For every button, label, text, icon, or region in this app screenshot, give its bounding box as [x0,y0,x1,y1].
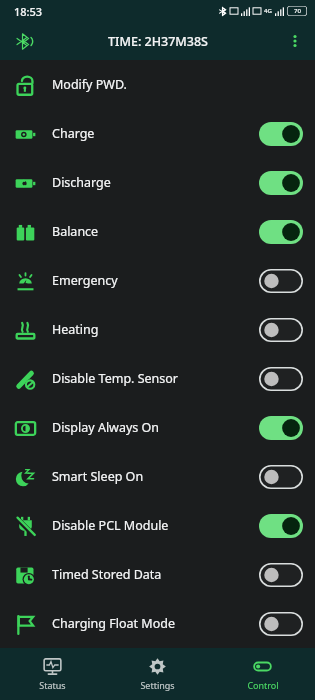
button[interactable]: On [259,171,303,195]
staticText: Emergency [52,272,259,289]
button[interactable]: Display Always On [0,403,315,452]
button[interactable]: On [259,122,303,146]
button[interactable]: Settings [105,648,210,700]
staticText: Control [247,679,279,691]
staticText: Charge [52,125,259,142]
staticText: Disable PCL Module [52,517,259,534]
button[interactable]: Status [0,648,105,700]
button[interactable]: More options [279,25,311,57]
button[interactable]: Charging Float Mode [0,599,315,648]
button[interactable]: Disable Temp. Sensor [0,354,315,403]
button[interactable]: Extra [0,648,315,697]
button[interactable]: Discharge [0,158,315,207]
staticText: Settings [140,679,175,691]
staticText: Balance [52,223,259,240]
staticText: TIME: 2H37M38S [108,33,208,50]
staticText: Display Always On [52,419,259,436]
button[interactable]: Modify PWD. [0,60,315,109]
staticText: 70 [294,7,301,15]
button[interactable]: On [259,514,303,538]
button[interactable]: Timed Stored Data [0,550,315,599]
button[interactable]: Off [259,465,303,489]
button[interactable]: Disable PCL Module [0,501,315,550]
button[interactable]: Emergency [0,256,315,305]
button[interactable]: Off [259,612,303,636]
button[interactable]: Balance [0,207,315,256]
button[interactable]: Bluetooth [6,25,38,57]
button[interactable]: On [259,220,303,244]
staticText: Modify PWD. [52,76,303,93]
button[interactable]: Off [259,563,303,587]
staticText: Smart Sleep On [52,468,259,485]
button[interactable]: Off [259,269,303,293]
button[interactable]: Off [259,367,303,391]
staticText: Disable Temp. Sensor [52,370,259,387]
staticText: Charging Float Mode [52,615,259,632]
staticText: 4G [264,7,272,15]
staticText: Extra [52,664,259,681]
button[interactable]: Charge [0,109,315,158]
button[interactable]: Heating [0,305,315,354]
staticText: Status [39,679,66,691]
button[interactable]: Off [259,661,303,685]
staticText: Heating [52,321,259,338]
button[interactable]: Smart Sleep On [0,452,315,501]
staticText: Discharge [52,174,259,191]
button[interactable]: Off [259,318,303,342]
button[interactable]: On [259,416,303,440]
button[interactable]: Control [210,648,315,700]
staticText: Timed Stored Data [52,566,259,583]
staticText: 18:53 [14,4,43,19]
